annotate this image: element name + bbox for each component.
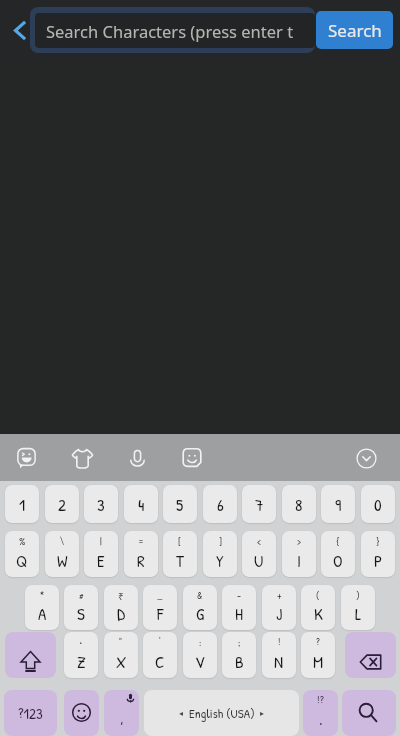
button[interactable]: _: [143, 585, 177, 630]
button[interactable]: 0: [361, 485, 395, 523]
button[interactable]: (: [301, 585, 335, 630]
staticText: _: [157, 589, 163, 603]
button[interactable]: Backspace: [345, 632, 396, 678]
staticText: !: [278, 636, 281, 650]
button[interactable]: Emoji: [64, 690, 99, 736]
staticText: S: [77, 602, 85, 625]
staticText: Search: [328, 19, 382, 42]
staticText: English (USA): [189, 704, 255, 722]
staticText: Q: [16, 549, 28, 572]
staticText: =: [138, 535, 144, 549]
staticText: ': [159, 636, 161, 650]
button[interactable]: Period: [303, 690, 338, 736]
staticText: X: [116, 650, 127, 673]
button[interactable]: +: [262, 585, 296, 630]
button[interactable]: *: [25, 585, 59, 630]
staticText: 0: [374, 493, 382, 516]
staticText: I: [297, 549, 301, 572]
button[interactable]: Collapse keyboard: [349, 441, 383, 475]
staticText: \: [60, 535, 65, 549]
button[interactable]: 4: [124, 485, 158, 523]
staticText: ?123: [18, 703, 43, 723]
button[interactable]: 2: [45, 485, 79, 523]
staticText: W: [57, 549, 68, 572]
staticText: C: [155, 650, 165, 673]
button[interactable]: 3: [84, 485, 118, 523]
staticText: P: [374, 549, 383, 572]
staticText: L: [355, 602, 362, 625]
button[interactable]: %: [5, 531, 39, 577]
staticText: (: [316, 589, 320, 603]
staticText: O: [333, 549, 343, 572]
staticText: 3: [97, 493, 105, 516]
button[interactable]: 8: [282, 485, 316, 523]
button[interactable]: ): [341, 585, 375, 630]
staticText: R: [137, 549, 145, 572]
button[interactable]: !: [262, 632, 296, 678]
staticText: .: [319, 707, 323, 730]
button[interactable]: 1: [5, 485, 39, 523]
button[interactable]: 9: [321, 485, 355, 523]
button[interactable]: }: [361, 531, 395, 577]
button[interactable]: Clothing stickers: [65, 441, 99, 475]
staticText: B: [235, 650, 244, 673]
button[interactable]: |: [84, 531, 118, 577]
staticText: &: [197, 589, 203, 603]
button[interactable]: Search: [342, 690, 396, 736]
button[interactable]: \: [45, 531, 79, 577]
button[interactable]: Voice input: [120, 441, 154, 475]
button[interactable]: ?: [301, 632, 335, 678]
button[interactable]: •: [64, 632, 98, 678]
button[interactable]: ;: [222, 632, 256, 678]
button[interactable]: 6: [203, 485, 237, 523]
staticText: 4: [138, 493, 145, 516]
staticText: 9: [335, 493, 342, 516]
staticText: ,: [120, 706, 124, 729]
button[interactable]: >: [282, 531, 316, 577]
staticText: Search Characters (press enter t: [46, 20, 294, 42]
button[interactable]: Shift: [5, 632, 56, 678]
button[interactable]: ': [143, 632, 177, 678]
staticText: >: [297, 535, 301, 549]
button[interactable]: -: [222, 585, 256, 630]
button[interactable]: Search: [316, 11, 393, 49]
staticText: Z: [77, 650, 86, 673]
button[interactable]: &: [183, 585, 217, 630]
button[interactable]: =: [124, 531, 158, 577]
button[interactable]: 7: [242, 485, 276, 523]
button[interactable]: Emoji: [175, 441, 209, 475]
staticText: M: [313, 650, 324, 673]
button[interactable]: 5: [163, 485, 197, 523]
staticText: |: [100, 535, 102, 549]
staticText: •: [79, 636, 83, 650]
button[interactable]: <: [242, 531, 276, 577]
staticText: 2: [58, 493, 66, 516]
button[interactable]: Search Characters (press enter t: [30, 7, 315, 53]
button[interactable]: :: [183, 632, 217, 678]
staticText: 1: [19, 493, 26, 516]
button[interactable]: #: [64, 585, 98, 630]
staticText: K: [314, 602, 323, 625]
button[interactable]: ]: [203, 531, 237, 577]
button[interactable]: [: [163, 531, 197, 577]
button[interactable]: Comma: [104, 690, 139, 736]
button[interactable]: Space: [144, 690, 299, 736]
staticText: }: [376, 535, 380, 549]
staticText: N: [274, 650, 284, 673]
button[interactable]: ": [104, 632, 138, 678]
button[interactable]: ₹: [104, 585, 138, 630]
button[interactable]: Back: [5, 15, 35, 45]
staticText: ◂: [179, 709, 184, 718]
staticText: 5: [176, 493, 184, 516]
staticText: 6: [217, 493, 224, 516]
staticText: *: [40, 589, 45, 603]
button[interactable]: Animated stickers: [9, 441, 43, 475]
staticText: <: [257, 535, 261, 549]
staticText: ): [356, 589, 360, 603]
staticText: H: [235, 602, 243, 625]
staticText: -: [237, 589, 242, 603]
staticText: !?: [317, 693, 324, 708]
staticText: ?: [316, 636, 320, 650]
button[interactable]: {: [321, 531, 355, 577]
button[interactable]: Symbols: [4, 690, 57, 736]
